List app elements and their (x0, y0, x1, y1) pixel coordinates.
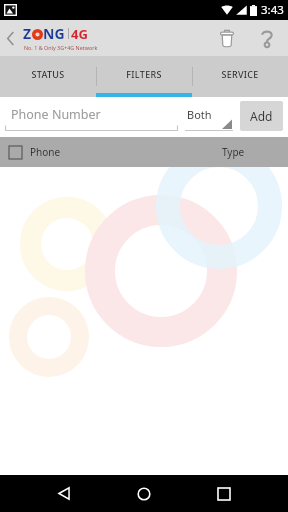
button[interactable]: SERVICE (192, 56, 288, 97)
button[interactable]: Home (124, 475, 164, 512)
staticText: FILTERS (126, 68, 162, 80)
staticText: Phone (30, 145, 61, 159)
staticText: STATUS (31, 68, 65, 80)
button[interactable]: Phone (9, 145, 61, 159)
button[interactable]: FILTERS (96, 56, 192, 97)
staticText: SERVICE (221, 68, 259, 80)
staticText: 4G (71, 25, 88, 43)
button[interactable]: Help (246, 20, 288, 56)
staticText: Type (222, 145, 245, 159)
button[interactable]: Add (240, 101, 283, 131)
button[interactable]: Phone Number (5, 100, 178, 131)
button[interactable]: Navigate up (0, 20, 20, 56)
staticText: Z (23, 24, 32, 43)
staticText: Both (187, 107, 212, 122)
button[interactable]: Delete (208, 20, 246, 56)
button[interactable]: Back (44, 475, 84, 512)
button[interactable]: Both (185, 100, 233, 131)
staticText: 3:43 (261, 2, 284, 18)
staticText: No. 1 & Only 3G+4G Network (24, 44, 98, 51)
button[interactable]: STATUS (0, 56, 96, 97)
staticText: Add (250, 108, 273, 124)
staticText: Phone Number (11, 106, 101, 123)
staticText: NG (43, 24, 65, 43)
button[interactable]: Recent apps (204, 475, 244, 512)
